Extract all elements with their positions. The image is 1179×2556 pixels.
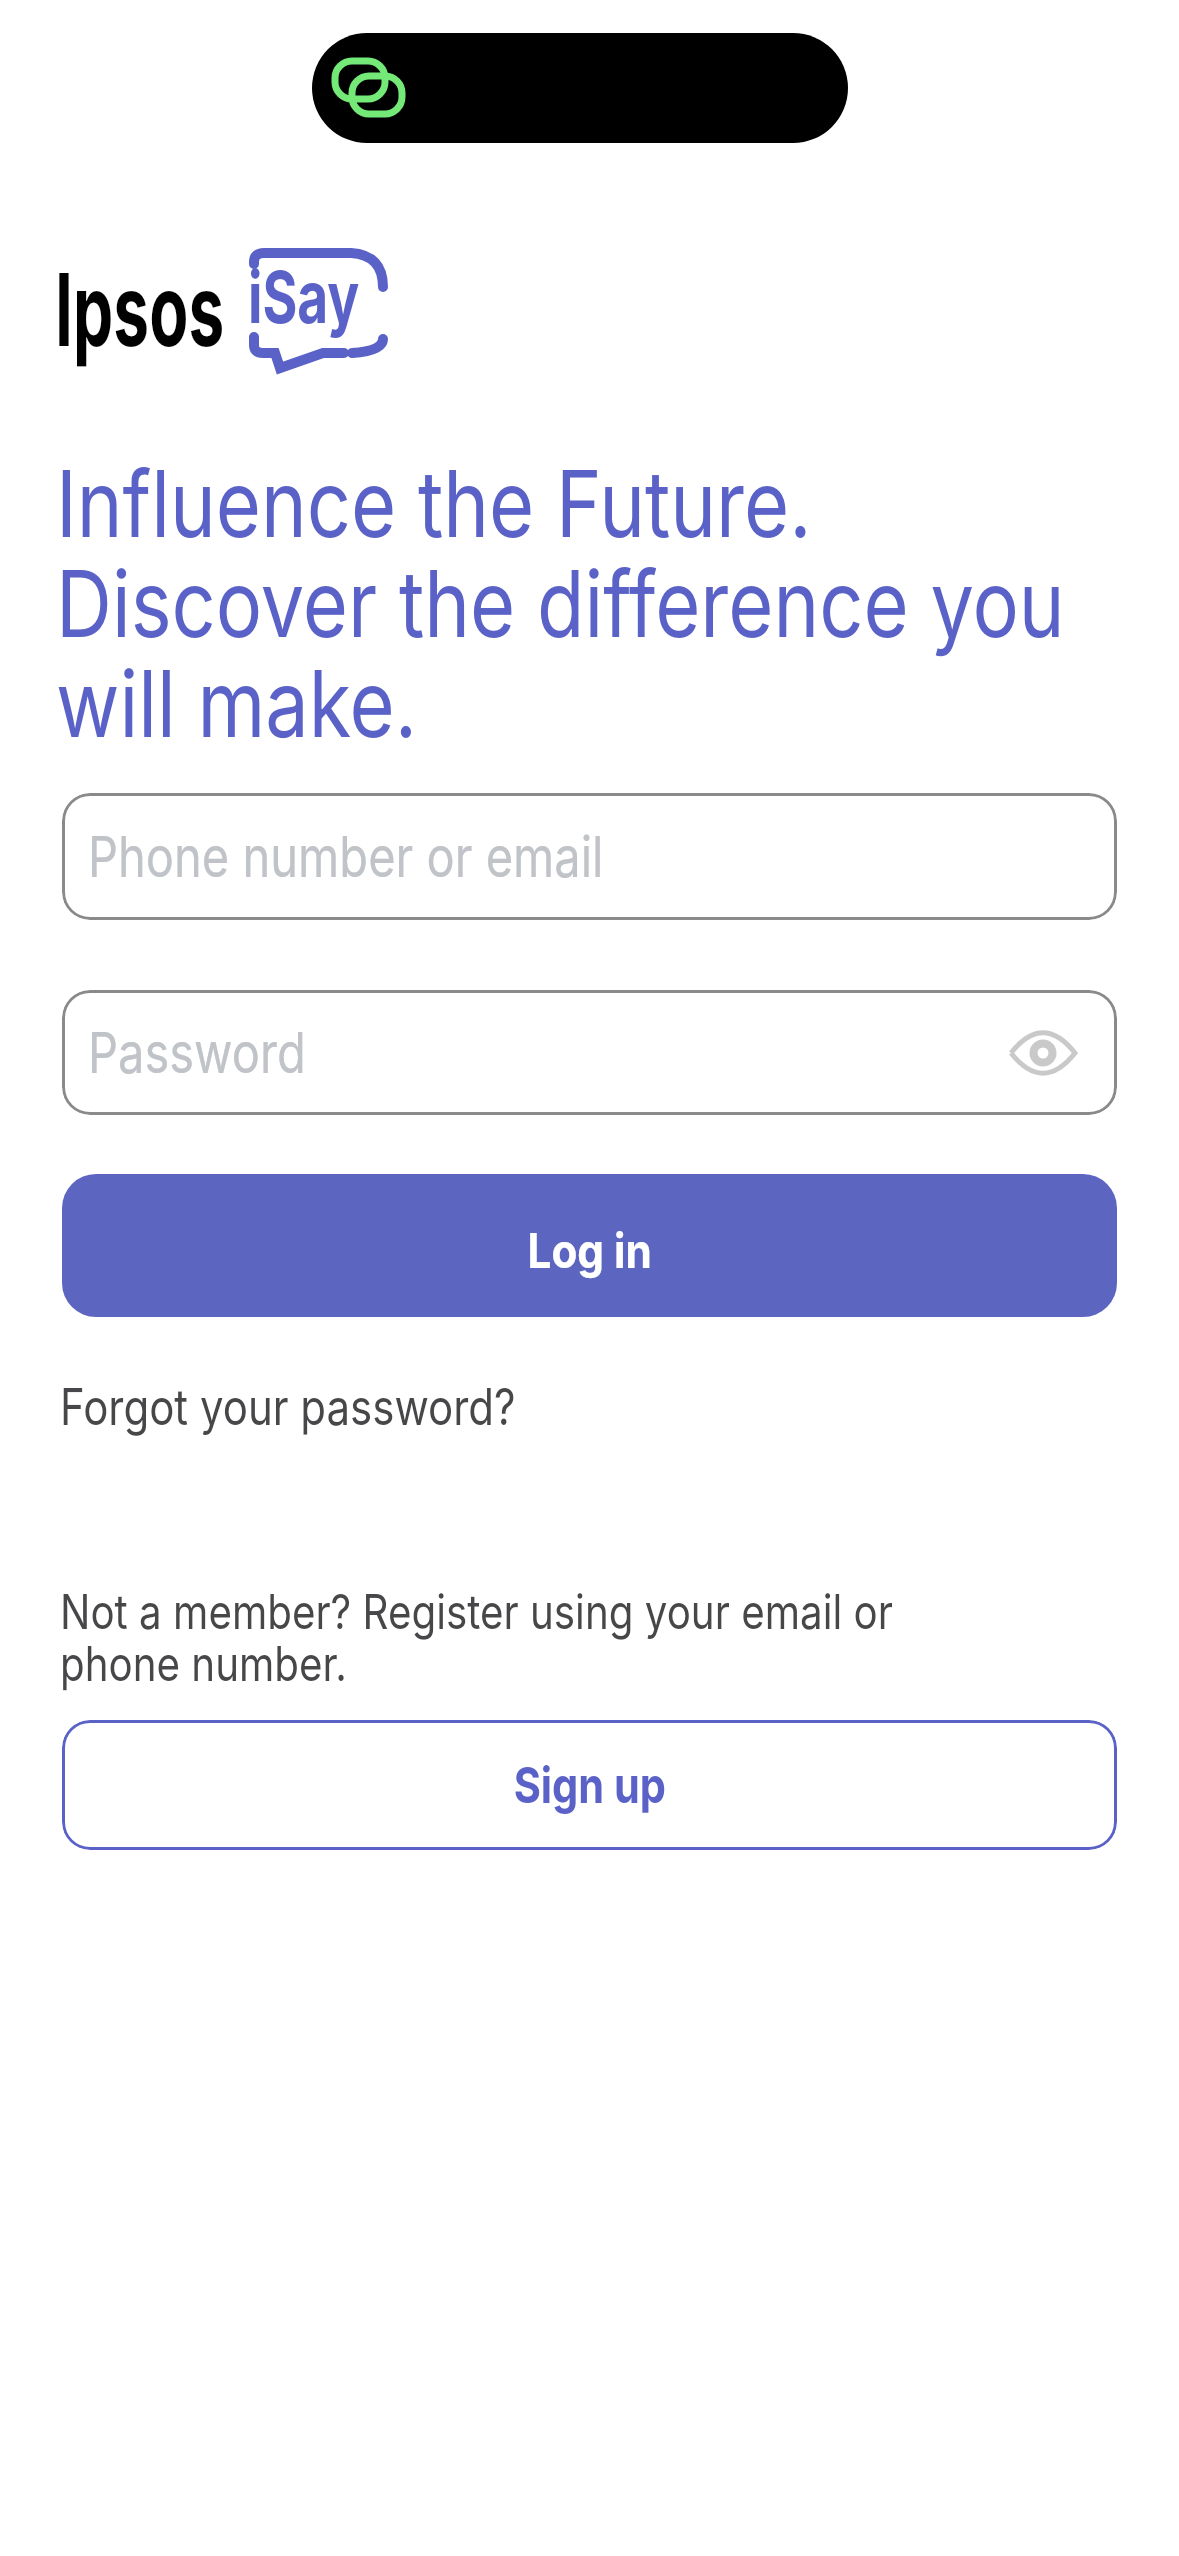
button[interactable]: Log in xyxy=(62,1174,1117,1317)
staticText: Password xyxy=(88,1019,306,1087)
staticText: Phone number or email xyxy=(88,823,604,891)
staticText: iSay xyxy=(248,253,360,340)
staticText: Sign up xyxy=(514,1755,666,1815)
staticText: Influence the Future. Discover the diffe… xyxy=(56,448,1065,759)
button[interactable]: Sign up xyxy=(62,1720,1117,1850)
staticText: Log in xyxy=(527,1221,652,1279)
button[interactable]: Forgot your password? xyxy=(60,1377,516,1437)
staticText: Not a member? Register using your email … xyxy=(60,1582,893,1693)
button[interactable]: Password xyxy=(62,990,1117,1115)
staticText: Ipsos xyxy=(55,249,225,370)
button[interactable]: Phone number or email xyxy=(62,793,1117,920)
